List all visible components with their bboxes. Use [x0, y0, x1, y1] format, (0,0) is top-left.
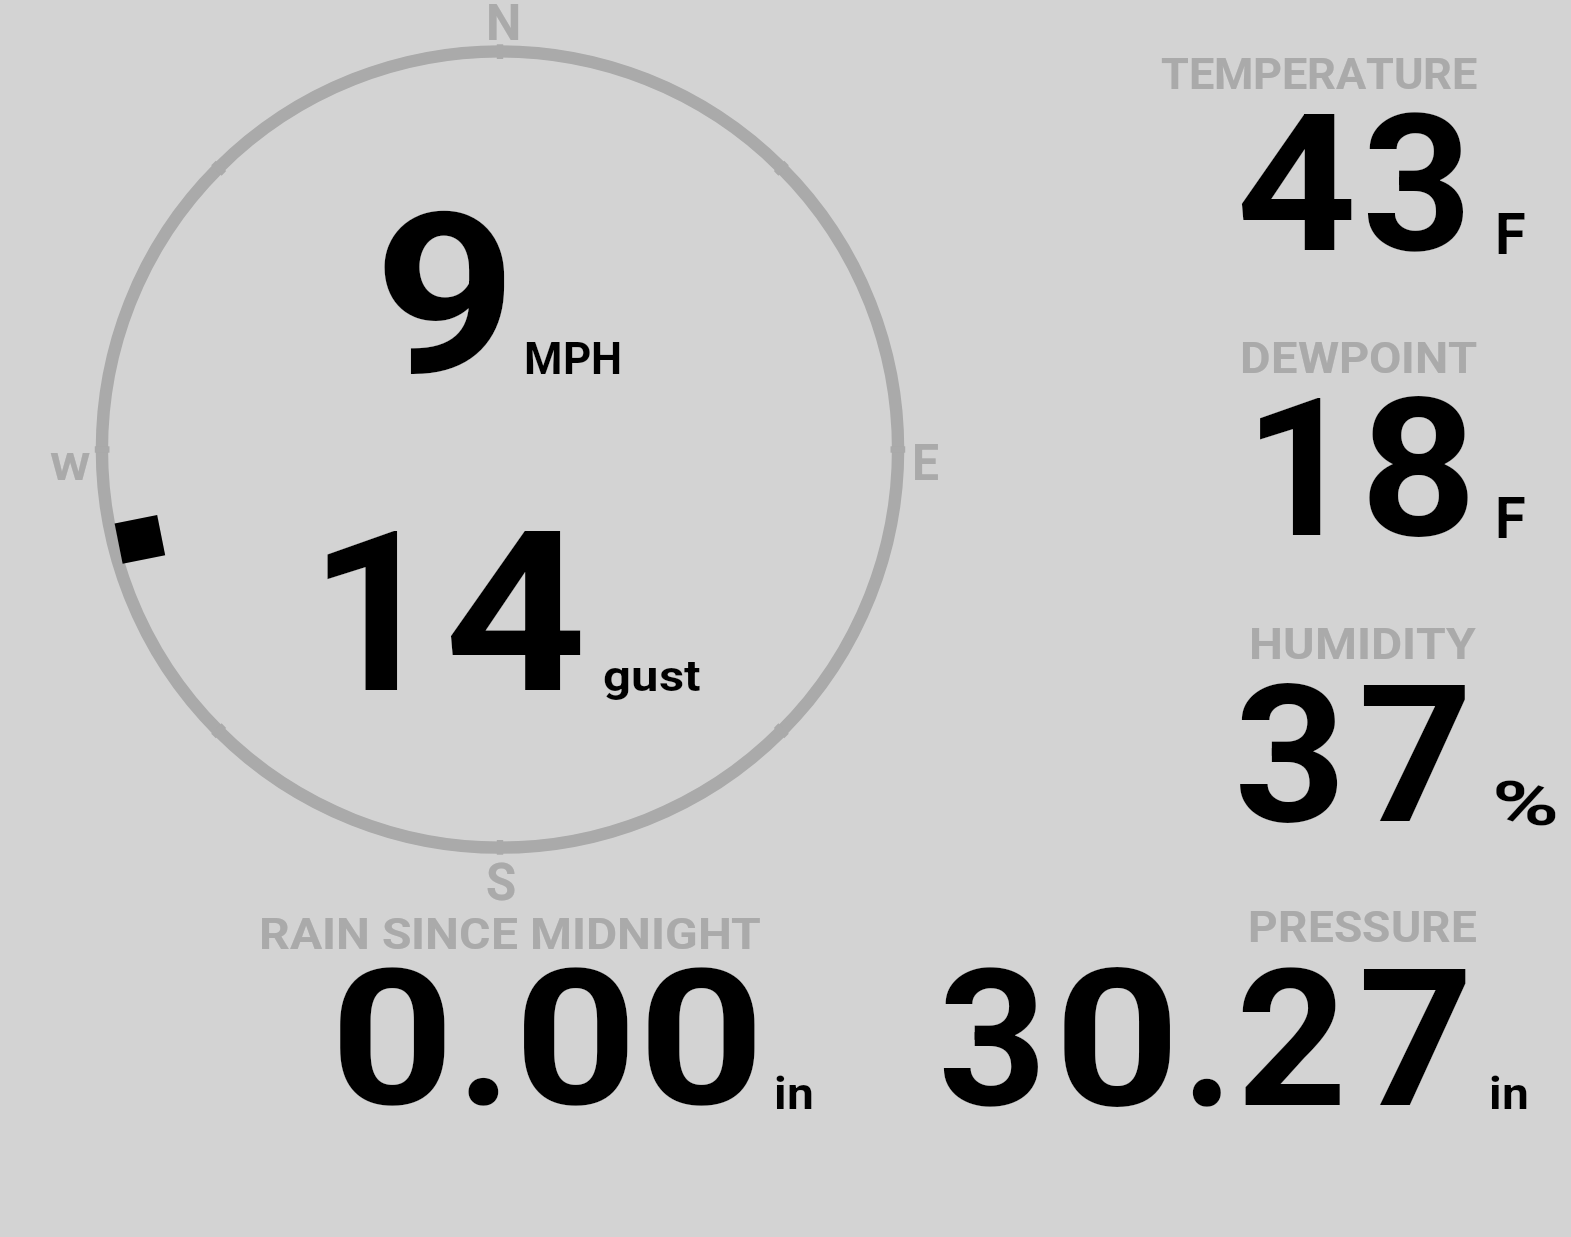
- button[interactable]: Humidity 37 percent: [1080, 585, 1571, 860]
- button[interactable]: Temperature 43 degrees Fahrenheit: [1080, 20, 1571, 290]
- button[interactable]: Dewpoint 18 degrees Fahrenheit: [1080, 300, 1571, 575]
- button[interactable]: Wind 9 miles per hour, gusting 14, from …: [0, 0, 1000, 900]
- button[interactable]: Rain since midnight 0.00 inches: [180, 880, 860, 1150]
- button[interactable]: Pressure 30.27 inches: [880, 880, 1571, 1150]
